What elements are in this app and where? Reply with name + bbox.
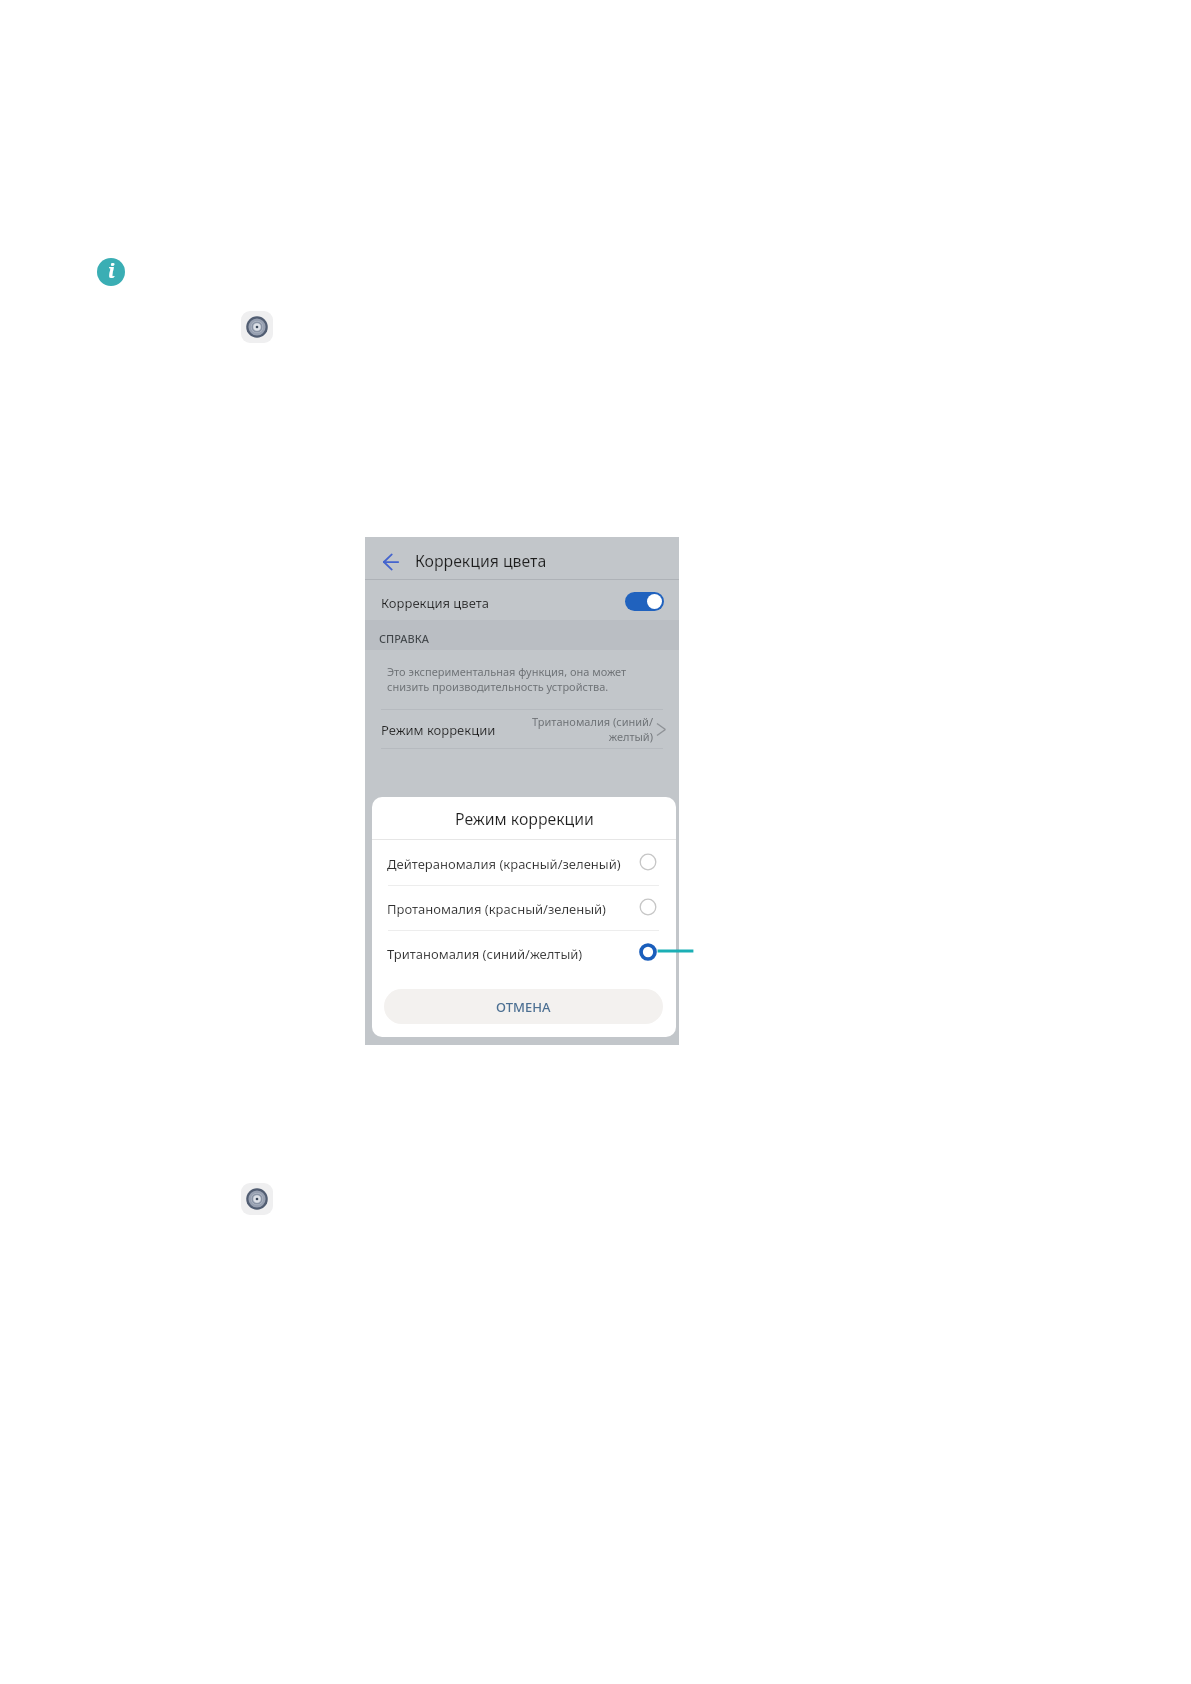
staticText: Тританомалия (синий/желтый) [387,945,583,963]
staticText: Дейтераномалия (красный/зеленый) [387,855,621,873]
button[interactable]: App icon [241,311,273,343]
staticText: ОТМЕНА [496,998,551,1016]
button[interactable]: Information [97,258,125,286]
staticText: Это экспериментальная функция, она может… [387,664,627,694]
button[interactable]: Коррекция цвета [365,580,679,657]
staticText: i [108,258,115,284]
staticText: Коррекция цвета [415,550,547,572]
staticText: Режим коррекции [381,721,496,739]
button[interactable]: Дейтераномалия (красный/зеленый) [372,840,676,885]
button[interactable]: App icon [241,1183,273,1215]
button[interactable]: Colour correction on [625,592,664,611]
staticText: Протаномалия (красный/зеленый) [387,900,607,918]
button[interactable]: Back [374,545,407,578]
staticText: СПРАВКА [379,631,430,646]
staticText: Режим коррекции [455,808,594,830]
button[interactable]: Режим коррекции [365,710,679,748]
button[interactable]: Тританомалия (синий/желтый) [372,930,676,975]
staticText: Коррекция цвета [381,594,489,612]
staticText: Тританомалия (синий/ желтый) [523,714,653,744]
button[interactable]: ОТМЕНА [384,989,663,1024]
button[interactable]: Протаномалия (красный/зеленый) [372,885,676,930]
